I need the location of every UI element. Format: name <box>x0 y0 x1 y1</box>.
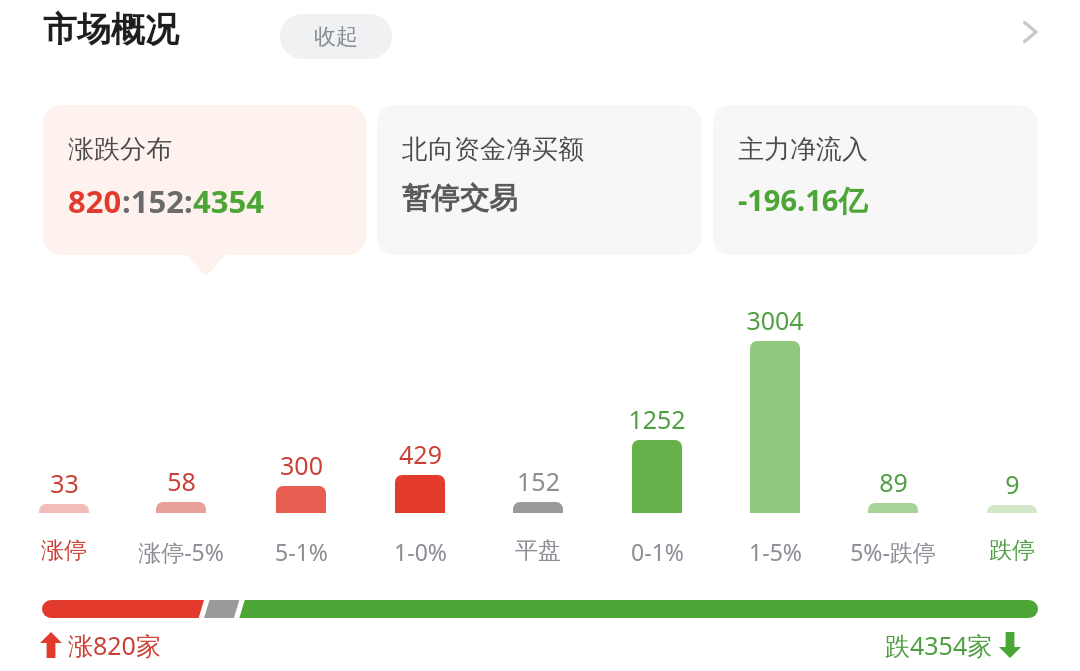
staticText: 5-1% <box>275 536 328 567</box>
staticText: 4354 <box>193 180 264 222</box>
staticText: :152: <box>122 180 193 222</box>
button[interactable]: More <box>1004 6 1056 58</box>
staticText: 820 <box>68 180 122 222</box>
staticText: 300 <box>280 448 323 482</box>
button[interactable]: 主力净流入 <box>713 105 1038 255</box>
button[interactable]: 收起 <box>280 14 392 59</box>
staticText: 暂停交易 <box>402 180 518 217</box>
staticText: 平盘 <box>515 536 561 565</box>
button[interactable]: 涨820家 <box>40 628 161 662</box>
staticText: 3004 <box>746 303 804 337</box>
staticText: 9 <box>1005 467 1020 501</box>
button[interactable]: 北向资金净买额 <box>377 105 702 255</box>
staticText: 市场概况 <box>43 8 179 51</box>
staticText: -196.16亿 <box>738 180 868 220</box>
staticText: 58 <box>167 464 196 498</box>
staticText: 429 <box>399 437 442 471</box>
staticText: 1-5% <box>749 536 802 567</box>
staticText: 涨820家 <box>68 628 161 662</box>
staticText: 0-1% <box>631 536 684 567</box>
staticText: 涨停-5% <box>138 536 224 567</box>
staticText: 89 <box>879 465 908 499</box>
staticText: 收起 <box>314 23 358 51</box>
staticText: 152 <box>517 464 560 498</box>
staticText: 33 <box>50 466 79 500</box>
staticText: 涨跌分布 <box>68 133 172 166</box>
button[interactable]: 涨跌分布 <box>43 105 366 255</box>
staticText: 1-0% <box>394 536 447 567</box>
staticText: 跌4354家 <box>885 628 993 662</box>
staticText: 跌停 <box>989 536 1035 565</box>
staticText: 主力净流入 <box>738 133 868 166</box>
staticText: 北向资金净买额 <box>402 133 584 166</box>
staticText: 1252 <box>628 402 686 436</box>
staticText: 涨停 <box>41 536 87 565</box>
button[interactable]: 跌4354家 <box>885 628 1021 662</box>
staticText: 5%-跌停 <box>850 536 936 567</box>
